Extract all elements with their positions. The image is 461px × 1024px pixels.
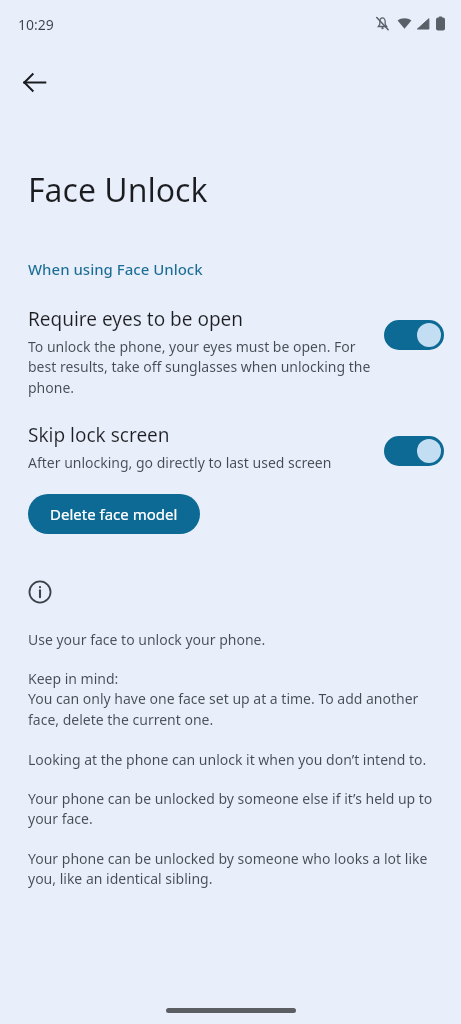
button[interactable]: Back [10,58,58,106]
staticText: 10:29 [18,15,54,34]
staticText: To unlock the phone, your eyes must be o… [28,337,373,398]
staticText: Delete face model [50,504,178,524]
button[interactable]: Delete face model [28,494,200,534]
button[interactable]: Toggle [383,434,445,468]
button[interactable]: Skip lock screen [0,422,461,472]
staticText: Face Unlock [28,168,208,212]
staticText: Looking at the phone can unlock it when … [28,750,427,769]
staticText: Keep in mind: You can only have one face… [28,669,439,730]
staticText: After unlocking, go directly to last use… [28,453,332,472]
staticText: Require eyes to be open [28,306,244,332]
staticText: When using Face Unlock [28,259,203,279]
staticText: Use your face to unlock your phone. [28,630,266,649]
staticText: Skip lock screen [28,422,170,448]
staticText: Your phone can be unlocked by someone wh… [28,849,439,889]
staticText: Your phone can be unlocked by someone el… [28,789,439,829]
button[interactable]: Toggle [383,318,445,352]
button[interactable]: Require eyes to be open [0,306,461,398]
